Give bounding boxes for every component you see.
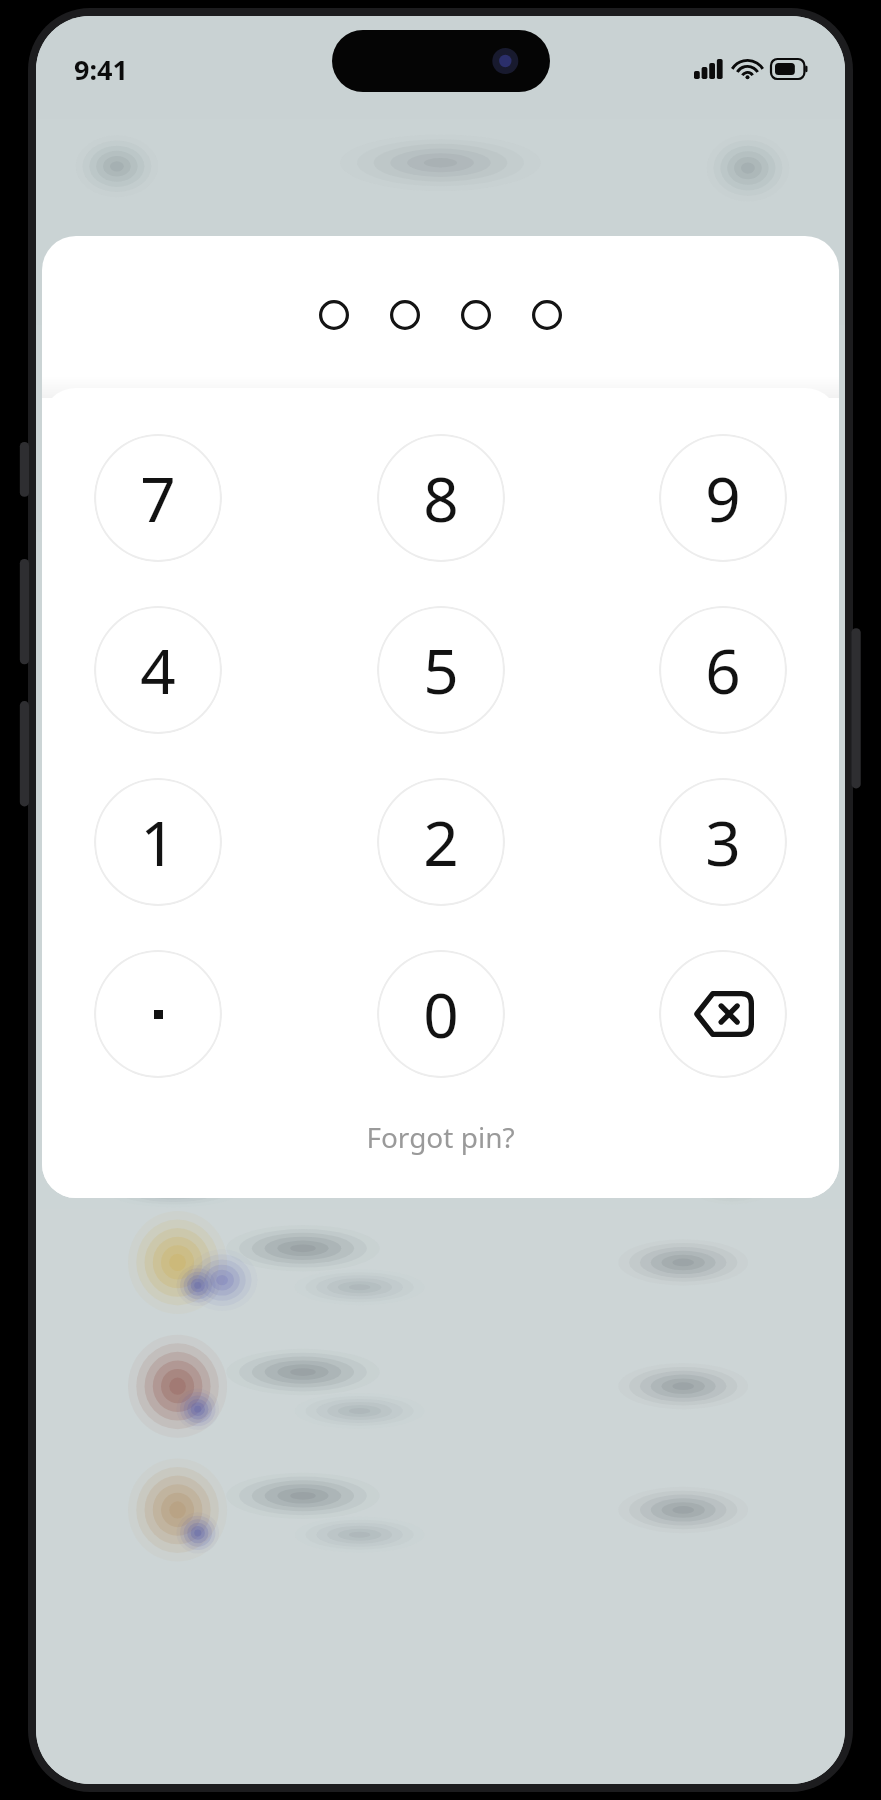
button[interactable]: 4 <box>94 606 222 734</box>
staticText: 4 <box>140 628 176 712</box>
button[interactable]: 2 <box>377 778 505 906</box>
button[interactable]: 6 <box>659 606 787 734</box>
button[interactable]: 9 <box>659 434 787 562</box>
button[interactable]: 7 <box>94 434 222 562</box>
button[interactable]: Backspace <box>659 950 787 1078</box>
button[interactable]: 5 <box>377 606 505 734</box>
staticText: 5 <box>423 628 459 712</box>
button[interactable]: Forgot pin? <box>350 1112 531 1162</box>
button[interactable] <box>94 950 222 1078</box>
staticText: 0 <box>423 972 459 1056</box>
staticText: 7 <box>140 456 176 540</box>
staticText: 6 <box>705 628 741 712</box>
button[interactable]: 1 <box>94 778 222 906</box>
staticText: 8 <box>423 456 459 540</box>
staticText: 1 <box>140 800 176 884</box>
staticText: Forgot pin? <box>366 1118 515 1156</box>
staticText: 9:41 <box>74 51 128 88</box>
staticText: 9 <box>705 456 741 540</box>
button[interactable]: 8 <box>377 434 505 562</box>
button[interactable]: 0 <box>377 950 505 1078</box>
button[interactable]: 3 <box>659 778 787 906</box>
staticText: 2 <box>423 800 459 884</box>
staticText: 3 <box>705 800 741 884</box>
